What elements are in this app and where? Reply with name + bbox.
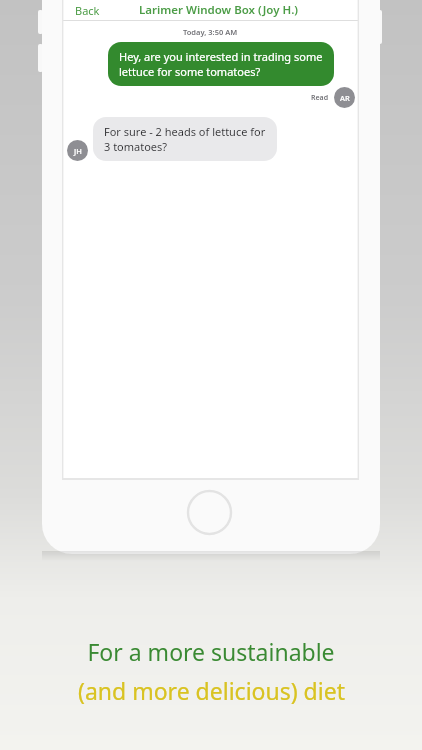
staticText: Today, 3:50 AM — [183, 27, 238, 37]
staticText: Larimer Window Box (Joy H.) — [139, 2, 299, 18]
button[interactable]: Back — [71, 0, 104, 20]
staticText: Hey, are you interested in trading some … — [119, 49, 323, 79]
staticText: For sure - 2 heads of lettuce for 3 toma… — [104, 124, 266, 154]
button[interactable]: Hey, are you interested in trading some … — [108, 42, 334, 86]
button[interactable]: Contact JH — [67, 140, 88, 161]
staticText: JH — [74, 146, 82, 156]
other: Home — [186, 489, 233, 536]
staticText: Read — [311, 93, 329, 103]
button[interactable]: For sure - 2 heads of lettuce for 3 toma… — [93, 117, 277, 161]
staticText: AR — [340, 93, 350, 103]
button[interactable]: Contact AR — [334, 87, 355, 108]
staticText: For a more sustainable — [87, 636, 335, 667]
staticText: (and more delicious) diet — [78, 675, 345, 706]
staticText: Back — [75, 3, 100, 17]
